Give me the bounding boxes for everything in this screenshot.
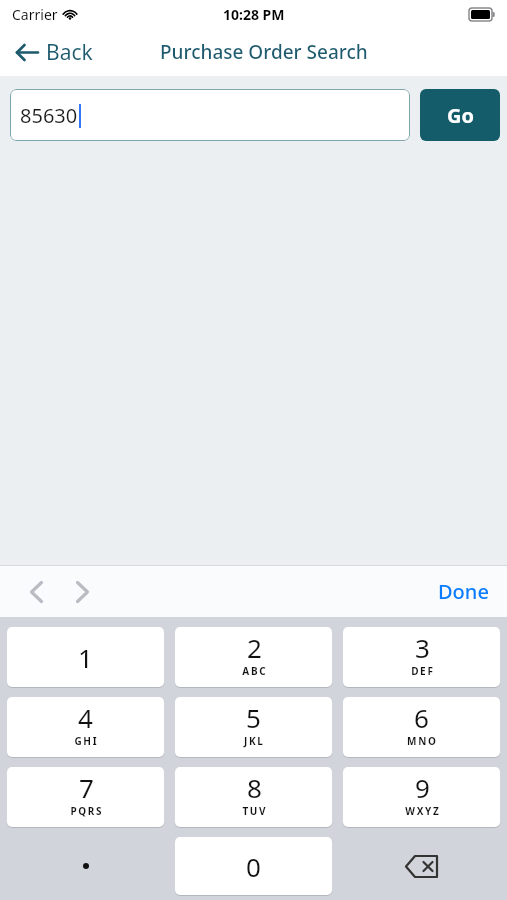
staticText: 5 [246,700,261,735]
button[interactable]: 0 [175,837,332,895]
button[interactable]: Back [0,32,105,73]
button[interactable]: 2 [175,627,332,687]
button[interactable]: Decimal point [7,837,164,895]
button[interactable]: 6 [343,697,500,757]
button[interactable]: 85630 [10,89,410,141]
staticText: A B C [242,664,266,678]
button[interactable]: 8 [175,767,332,827]
staticText: T U V [242,804,266,818]
staticText: 0 [246,849,261,884]
staticText: J K L [244,734,263,748]
staticText: 6 [414,700,429,735]
staticText: 2 [247,630,262,665]
staticText: D E F [411,664,433,678]
button[interactable]: 1 [7,627,164,687]
staticText: Purchase Order Search [160,39,368,65]
staticText: 7 [79,770,94,805]
staticText: G H I [74,734,97,748]
button[interactable]: 4 [7,697,164,757]
button[interactable]: 7 [7,767,164,827]
button[interactable]: 9 [343,767,500,827]
staticText: Go [447,102,474,129]
staticText: Back [46,38,93,67]
staticText: 8 [247,770,262,805]
staticText: 3 [415,630,430,665]
button[interactable]: Backspace [343,837,500,895]
staticText: P Q R S [70,804,102,818]
staticText: 85630 [20,102,78,129]
staticText: Carrier [12,5,58,24]
button[interactable]: Go [420,89,500,141]
staticText: W X Y Z [405,804,439,818]
button[interactable]: 3 [343,627,500,687]
staticText: Done [438,578,489,605]
button[interactable]: Done [420,570,507,613]
button[interactable]: 5 [175,697,332,757]
button[interactable]: Previous field [20,576,52,608]
button[interactable]: Next field [66,576,98,608]
staticText: 4 [78,700,93,735]
staticText: 10:28 PM [223,5,285,24]
staticText: 9 [415,770,430,805]
staticText: M N O [407,734,436,748]
staticText: 1 [78,640,93,675]
